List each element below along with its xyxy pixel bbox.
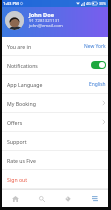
staticText: 1:43 PM bbox=[3, 1, 19, 7]
button[interactable]: App Language bbox=[0, 75, 111, 94]
button[interactable]: Search bbox=[29, 190, 55, 207]
staticText: Rate us Five bbox=[7, 157, 36, 164]
staticText: Support bbox=[7, 138, 27, 145]
staticText: John Doe bbox=[29, 11, 55, 19]
button[interactable]: Sign out bbox=[0, 170, 111, 189]
button[interactable]: Menu bbox=[82, 190, 108, 207]
button[interactable]: Support bbox=[0, 132, 111, 151]
staticText: Notifications bbox=[7, 62, 38, 69]
button[interactable]: Offers bbox=[55, 190, 81, 207]
staticText: New York bbox=[84, 43, 106, 50]
staticText: Offers bbox=[7, 119, 23, 126]
button[interactable]: Notifications toggle bbox=[91, 61, 106, 69]
staticText: john@email.com bbox=[29, 22, 63, 28]
staticText: App Language bbox=[7, 81, 43, 88]
staticText: Sign out bbox=[7, 176, 28, 183]
button[interactable]: Notifications bbox=[0, 56, 111, 75]
button[interactable]: Rate us Five bbox=[0, 151, 111, 170]
staticText: 30% bbox=[99, 1, 107, 6]
staticText: My Booking bbox=[7, 100, 36, 107]
button[interactable]: Home bbox=[2, 190, 28, 207]
button[interactable]: My Booking bbox=[0, 94, 111, 113]
button[interactable]: You are in bbox=[0, 37, 111, 56]
staticText: 91 7281321131 bbox=[29, 17, 60, 23]
staticText: English bbox=[89, 81, 106, 88]
staticText: 4G bbox=[86, 1, 91, 6]
staticText: You are in bbox=[7, 43, 32, 50]
button[interactable]: Offers bbox=[0, 113, 111, 132]
